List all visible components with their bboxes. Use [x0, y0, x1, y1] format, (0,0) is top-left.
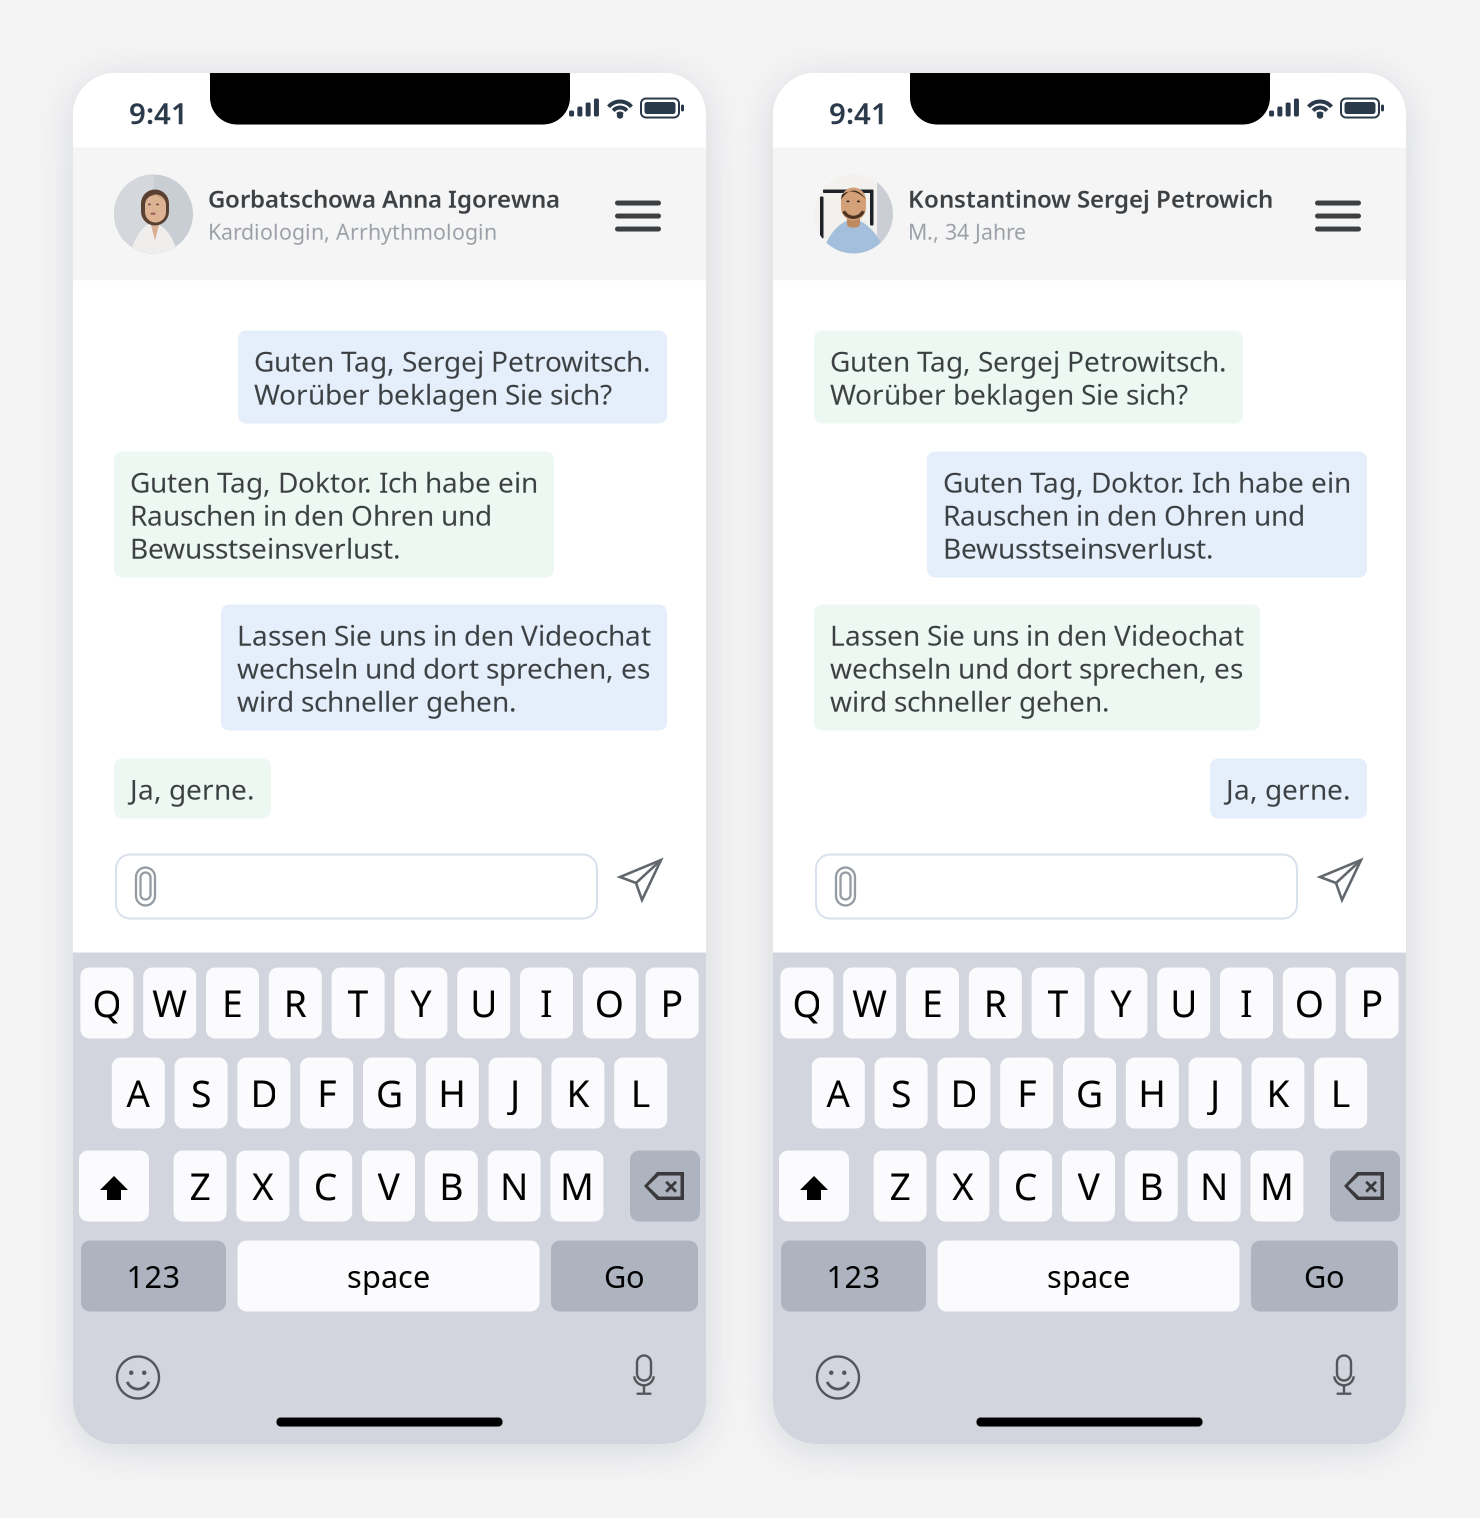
button[interactable]: F — [1000, 1057, 1053, 1128]
button[interactable]: O — [1283, 967, 1336, 1038]
staticText: A — [826, 1068, 850, 1118]
button[interactable]: R — [969, 967, 1022, 1038]
button[interactable]: N — [1188, 1150, 1241, 1221]
button[interactable]: Q — [80, 967, 133, 1038]
button[interactable] — [816, 854, 1297, 918]
button[interactable]: A — [812, 1057, 865, 1128]
button[interactable]: E — [206, 967, 259, 1038]
button[interactable]: D — [237, 1057, 290, 1128]
button[interactable]: G — [1063, 1057, 1116, 1128]
staticText: L — [1331, 1068, 1351, 1118]
button[interactable]: 123 — [81, 1240, 226, 1311]
button[interactable]: C — [999, 1150, 1052, 1221]
button[interactable]: I — [1220, 967, 1273, 1038]
button[interactable]: X — [936, 1150, 989, 1221]
button[interactable]: P — [1346, 967, 1399, 1038]
button[interactable]: A — [112, 1057, 165, 1128]
button[interactable]: B — [1125, 1150, 1178, 1221]
button[interactable]: L — [1314, 1057, 1367, 1128]
staticText: Q — [92, 978, 121, 1028]
button[interactable]: Shift — [779, 1150, 849, 1221]
button[interactable]: P — [646, 967, 699, 1038]
staticText: U — [1170, 978, 1197, 1028]
staticText: B — [439, 1161, 463, 1211]
button[interactable]: V — [362, 1150, 415, 1221]
button[interactable] — [116, 854, 597, 918]
staticText: V — [377, 1161, 399, 1211]
button[interactable]: M — [550, 1150, 603, 1221]
staticText: A — [126, 1068, 150, 1118]
button[interactable]: Emoji — [116, 1355, 160, 1399]
button[interactable]: Dictation — [1329, 1353, 1359, 1401]
button[interactable]: X — [236, 1150, 289, 1221]
button[interactable]: M — [1250, 1150, 1303, 1221]
button[interactable]: U — [1157, 967, 1210, 1038]
button[interactable]: W — [843, 967, 896, 1038]
button[interactable]: Go — [551, 1240, 698, 1311]
button[interactable]: Y — [1094, 967, 1147, 1038]
button[interactable]: Emoji — [816, 1355, 860, 1399]
staticText: L — [631, 1068, 651, 1118]
button[interactable]: Menu — [615, 184, 661, 244]
staticText: Lassen Sie uns in den Videochat — [830, 616, 1244, 654]
button[interactable]: Shift — [79, 1150, 149, 1221]
button[interactable]: J — [489, 1057, 542, 1128]
button[interactable]: C — [299, 1150, 352, 1221]
staticText: H — [1138, 1068, 1166, 1118]
button[interactable]: B — [425, 1150, 478, 1221]
button[interactable]: S — [875, 1057, 928, 1128]
button[interactable]: D — [937, 1057, 990, 1128]
button[interactable]: space — [237, 1240, 539, 1311]
staticText: P — [1361, 978, 1384, 1028]
staticText: wird schneller gehen. — [237, 682, 517, 720]
staticText: F — [1017, 1068, 1036, 1118]
staticText: D — [950, 1068, 977, 1118]
button[interactable]: J — [1189, 1057, 1242, 1128]
button[interactable]: Send — [1318, 864, 1363, 909]
staticText: C — [314, 1161, 338, 1211]
button[interactable]: 123 — [781, 1240, 926, 1311]
button[interactable]: O — [583, 967, 636, 1038]
staticText: M — [1260, 1161, 1294, 1211]
staticText: Z — [890, 1161, 911, 1211]
staticText: M — [560, 1161, 594, 1211]
button[interactable]: L — [614, 1057, 667, 1128]
button[interactable]: W — [143, 967, 196, 1038]
button[interactable]: T — [332, 967, 385, 1038]
staticText: X — [252, 1161, 274, 1211]
button[interactable]: space — [937, 1240, 1239, 1311]
button[interactable]: Delete — [1330, 1150, 1400, 1221]
button[interactable]: Y — [394, 967, 447, 1038]
button[interactable]: Dictation — [629, 1353, 659, 1401]
button[interactable]: Q — [780, 967, 833, 1038]
button[interactable]: N — [488, 1150, 541, 1221]
button[interactable]: Delete — [630, 1150, 700, 1221]
staticText: Rauschen in den Ohren und — [943, 496, 1305, 534]
staticText: T — [348, 978, 369, 1028]
button[interactable]: Z — [174, 1150, 227, 1221]
button[interactable]: G — [363, 1057, 416, 1128]
staticText: 9:41 — [829, 93, 888, 132]
button[interactable]: R — [269, 967, 322, 1038]
staticText: W — [152, 978, 187, 1028]
staticText: Bewusstseinsverlust. — [130, 529, 401, 567]
button[interactable]: I — [520, 967, 573, 1038]
button[interactable]: Konstantinow Sergej Petrowich — [773, 147, 1273, 280]
button[interactable]: S — [175, 1057, 228, 1128]
button[interactable]: E — [906, 967, 959, 1038]
button[interactable]: Menu — [1315, 184, 1361, 244]
button[interactable]: H — [1126, 1057, 1179, 1128]
button[interactable]: K — [1251, 1057, 1304, 1128]
button[interactable]: T — [1032, 967, 1085, 1038]
button[interactable]: K — [551, 1057, 604, 1128]
button[interactable]: F — [300, 1057, 353, 1128]
button[interactable]: Z — [874, 1150, 927, 1221]
button[interactable]: Go — [1251, 1240, 1398, 1311]
staticText: E — [222, 978, 243, 1028]
button[interactable]: Send — [618, 864, 663, 909]
button[interactable]: Gorbatschowa Anna Igorewna — [73, 147, 560, 280]
button[interactable]: V — [1062, 1150, 1115, 1221]
staticText: N — [1200, 1161, 1228, 1211]
button[interactable]: H — [426, 1057, 479, 1128]
button[interactable]: U — [457, 967, 510, 1038]
